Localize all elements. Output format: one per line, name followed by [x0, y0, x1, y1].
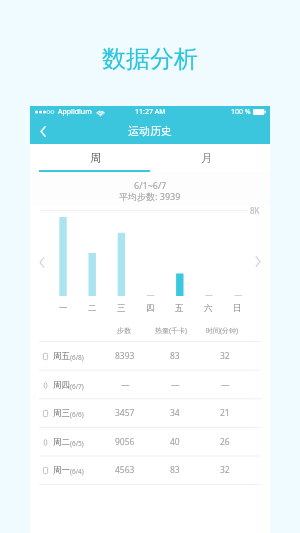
- staticText: 11:27 AM: [135, 107, 166, 117]
- staticText: —: [221, 379, 230, 391]
- staticText: 100 %: [231, 107, 251, 117]
- staticText: 32: [220, 464, 230, 476]
- staticText: 40: [170, 436, 180, 448]
- staticText: 二: [88, 303, 97, 314]
- staticText: 月: [201, 151, 212, 165]
- button[interactable]: 周二: [30, 428, 270, 456]
- button[interactable]: 周一: [30, 456, 270, 484]
- staticText: 三: [117, 303, 126, 314]
- staticText: (6/5): [70, 439, 84, 448]
- staticText: —: [121, 379, 130, 391]
- staticText: Applidium: [58, 107, 92, 117]
- button[interactable]: Previous week: [32, 252, 52, 272]
- staticText: 数据分析: [102, 44, 198, 74]
- staticText: 21: [220, 407, 230, 419]
- staticText: 26: [220, 436, 230, 448]
- staticText: —: [171, 379, 180, 391]
- staticText: 周: [90, 151, 101, 165]
- staticText: 34: [170, 407, 180, 419]
- staticText: 32: [220, 350, 230, 362]
- button[interactable]: 周三: [30, 399, 270, 427]
- staticText: 步数: [117, 326, 131, 335]
- staticText: 热量(千卡): [155, 326, 188, 336]
- staticText: (6/8): [70, 353, 84, 362]
- staticText: 平均步数: 3939: [119, 190, 181, 202]
- staticText: 日: [233, 303, 242, 314]
- staticText: 一: [59, 303, 68, 314]
- staticText: 6/1~6/7: [134, 179, 167, 191]
- button[interactable]: 周五: [30, 342, 270, 370]
- button[interactable]: 月: [150, 144, 261, 172]
- staticText: 运动历史: [128, 124, 172, 138]
- button[interactable]: 周: [39, 144, 150, 172]
- button[interactable]: 周四: [30, 371, 270, 399]
- staticText: 周三: [53, 408, 70, 419]
- staticText: 周四: [53, 380, 70, 391]
- staticText: 4563: [115, 464, 135, 476]
- button[interactable]: Next week: [248, 251, 268, 271]
- staticText: 六: [204, 303, 213, 314]
- staticText: 时间(分钟): [206, 326, 239, 336]
- staticText: (6/4): [70, 467, 84, 476]
- staticText: 五: [175, 303, 184, 314]
- staticText: 3457: [115, 407, 135, 419]
- button[interactable]: Back: [33, 121, 53, 141]
- staticText: 83: [170, 464, 180, 476]
- staticText: 周五: [53, 351, 70, 362]
- staticText: (6/7): [70, 382, 84, 391]
- staticText: 9056: [115, 436, 135, 448]
- staticText: 8393: [115, 350, 135, 362]
- staticText: 周二: [53, 437, 70, 448]
- staticText: 83: [170, 350, 180, 362]
- staticText: 周一: [53, 465, 70, 476]
- staticText: 四: [146, 303, 155, 314]
- staticText: (6/6): [70, 410, 84, 419]
- staticText: 8K: [250, 205, 260, 216]
